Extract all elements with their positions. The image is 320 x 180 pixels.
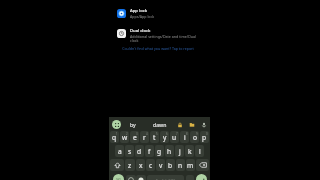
button[interactable]: v (156, 159, 165, 171)
staticText: 5 (156, 132, 158, 136)
staticText: s (128, 147, 132, 156)
button[interactable]: q (110, 131, 119, 143)
staticText: 1 (116, 132, 118, 136)
button[interactable]: f (145, 145, 154, 157)
button[interactable]: Enter (196, 174, 207, 180)
button[interactable]: Backspace (196, 159, 209, 171)
button[interactable]: m (186, 159, 195, 171)
staticText: Dual clock (130, 28, 151, 34)
button[interactable]: a (115, 145, 124, 157)
button[interactable]: i (180, 131, 189, 143)
button[interactable]: by (126, 119, 140, 130)
staticText: b (168, 161, 173, 170)
button[interactable]: Clipboard (187, 120, 196, 129)
button[interactable]: k (185, 145, 194, 157)
staticText: 8 (186, 132, 188, 136)
button[interactable]: t (150, 131, 159, 143)
staticText: k (188, 147, 192, 156)
button[interactable]: Incognito mode (175, 120, 184, 129)
button[interactable]: e (130, 131, 139, 143)
button[interactable]: Voice input (199, 120, 208, 129)
button[interactable]: Dual clock (105, 28, 211, 47)
staticText: z (128, 161, 132, 170)
staticText: by (130, 121, 136, 128)
staticText: o (193, 133, 197, 142)
button[interactable]: Couldn't find what you want? Tap to repo… (105, 45, 211, 51)
button[interactable]: d (135, 145, 144, 157)
staticText: j (179, 147, 181, 156)
staticText: e (133, 133, 137, 142)
staticText: 2 (126, 132, 128, 136)
staticText: dawn (153, 121, 167, 128)
button[interactable]: p (200, 131, 209, 143)
staticText: App lock (130, 8, 148, 14)
button[interactable]: l (195, 145, 204, 157)
button[interactable]: s (125, 145, 134, 157)
staticText: l (199, 147, 201, 156)
staticText: h (167, 147, 172, 156)
staticText: 7 (176, 132, 178, 136)
button[interactable]: o (190, 131, 199, 143)
button[interactable]: r (140, 131, 149, 143)
button[interactable]: App lock (105, 8, 211, 27)
staticText: English (US) (156, 178, 175, 180)
staticText: u (172, 133, 177, 142)
staticText: 4 (146, 132, 148, 136)
button[interactable]: z (125, 159, 135, 171)
button[interactable]: g (155, 145, 164, 157)
staticText: q (112, 133, 117, 142)
button[interactable]: English (US) (147, 175, 184, 180)
staticText: v (159, 161, 163, 170)
button[interactable]: n (176, 159, 185, 171)
staticText: f (148, 147, 151, 156)
button[interactable]: Emoji (126, 175, 136, 180)
staticText: y (163, 133, 167, 142)
button[interactable]: Symbols (113, 174, 124, 180)
staticText: i (184, 133, 186, 142)
button[interactable]: dawn (152, 119, 168, 130)
staticText: m (187, 161, 194, 170)
staticText: c (149, 161, 153, 170)
staticText: 6 (166, 132, 168, 136)
button[interactable]: h (165, 145, 174, 157)
staticText: !#1 (116, 177, 122, 180)
button[interactable]: u (170, 131, 179, 143)
staticText: g (157, 147, 162, 156)
button[interactable]: w (120, 131, 129, 143)
staticText: 0 (206, 132, 208, 136)
button[interactable]: Shift (110, 159, 124, 171)
button[interactable]: Keyboard toolbar (112, 120, 121, 129)
button[interactable]: y (160, 131, 169, 143)
staticText: d (137, 147, 142, 156)
staticText: a (118, 147, 122, 156)
staticText: 3 (136, 132, 138, 136)
staticText: Apps/App lock (130, 14, 155, 19)
staticText: r (143, 133, 146, 142)
button[interactable]: x (136, 159, 145, 171)
staticText: n (178, 161, 183, 170)
staticText: t (153, 133, 156, 142)
button[interactable]: c (146, 159, 155, 171)
staticText: 9 (196, 132, 198, 136)
staticText: Couldn't find what you want? Tap to repo… (122, 46, 194, 51)
button[interactable]: Settings (136, 175, 146, 180)
staticText: x (139, 161, 143, 170)
button[interactable]: b (166, 159, 175, 171)
button[interactable]: j (175, 145, 184, 157)
staticText: w (122, 133, 128, 142)
staticText: p (202, 133, 207, 142)
staticText: Additional settings/Date and time/Dual c… (130, 34, 203, 44)
